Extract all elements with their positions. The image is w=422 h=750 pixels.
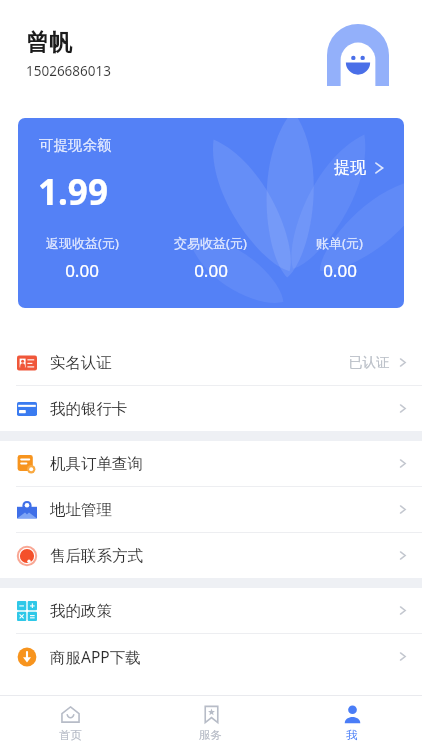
staticText: 账单(元)	[316, 234, 363, 252]
button[interactable]: 我的银行卡	[0, 386, 422, 431]
staticText: 提现	[334, 158, 366, 178]
button[interactable]: 提现	[328, 154, 392, 182]
button[interactable]: 我	[281, 696, 422, 750]
staticText: 0.00	[65, 259, 99, 282]
button[interactable]: 账单(元)	[275, 234, 404, 282]
staticText: 0.00	[323, 259, 357, 282]
staticText: 首页	[59, 728, 82, 742]
button[interactable]: 机具订单查询	[0, 441, 422, 486]
staticText: 实名认证	[50, 353, 112, 373]
button[interactable]: 返现收益(元)	[18, 234, 146, 282]
button[interactable]: 商服APP下载	[0, 634, 422, 679]
button[interactable]: 首页	[0, 696, 140, 750]
staticText: 服务	[199, 728, 222, 742]
staticText: 售后联系方式	[50, 546, 143, 566]
staticText: 15026686013	[26, 62, 111, 80]
staticText: 曾帆	[26, 28, 72, 57]
staticText: 商服APP下载	[50, 646, 141, 667]
staticText: 地址管理	[50, 500, 112, 520]
staticText: 已认证	[349, 354, 390, 371]
button[interactable]: Avatar	[327, 24, 389, 86]
staticText: 我	[346, 728, 358, 742]
staticText: 可提现余额	[39, 136, 112, 154]
staticText: 我的政策	[50, 601, 112, 621]
staticText: 返现收益(元)	[46, 234, 119, 252]
staticText: 0.00	[194, 259, 228, 282]
staticText: 1.99	[38, 168, 108, 216]
button[interactable]: 售后联系方式	[0, 533, 422, 578]
button[interactable]: 服务	[140, 696, 281, 750]
staticText: 我的银行卡	[50, 399, 128, 419]
button[interactable]: 交易收益(元)	[146, 234, 275, 282]
staticText: 机具订单查询	[50, 454, 143, 474]
button[interactable]: 我的政策	[0, 588, 422, 633]
staticText: 交易收益(元)	[174, 234, 247, 252]
button[interactable]: 实名认证	[0, 340, 422, 385]
button[interactable]: 地址管理	[0, 487, 422, 532]
